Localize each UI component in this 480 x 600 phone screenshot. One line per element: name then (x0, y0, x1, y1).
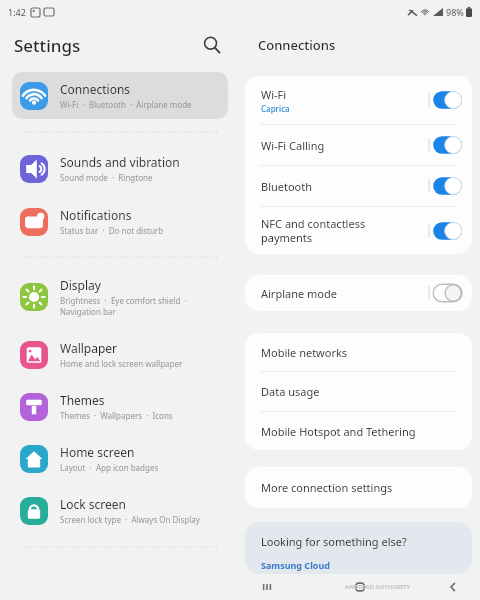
button[interactable]: Samsung Cloud (245, 559, 472, 571)
staticText: Connections (60, 81, 131, 97)
staticText: Brightness · Eye comfort shield · Naviga… (60, 295, 187, 317)
staticText: Sounds and vibration (60, 154, 180, 170)
staticText: 1:42 (8, 6, 26, 18)
button[interactable]: Connections (12, 72, 228, 119)
button[interactable]: Display (12, 268, 228, 326)
button[interactable]: Mobile Hotspot and Tethering (245, 412, 472, 450)
staticText: Display (60, 277, 101, 293)
staticText: Data usage (261, 384, 320, 399)
button[interactable]: Wi-Fi Calling (245, 125, 472, 165)
staticText: Screen lock type · Always On Display (60, 514, 200, 525)
staticText: Layout · App icon badges (60, 462, 159, 473)
staticText: Settings (14, 34, 81, 57)
button[interactable]: NFC and contactless payments (245, 207, 472, 254)
staticText: Mobile Hotspot and Tethering (261, 424, 416, 439)
button[interactable]: Wi-Fi (245, 76, 472, 124)
button[interactable]: Recents (250, 575, 284, 599)
button[interactable]: Looking for something else? (245, 534, 472, 549)
staticText: Themes (60, 392, 105, 408)
staticText: Themes · Wallpapers · Icons (60, 410, 173, 421)
staticText: Lock screen (60, 496, 127, 512)
staticText: Wi-Fi (261, 87, 287, 102)
staticText: ANDROID AUTHORITY (345, 583, 411, 591)
button[interactable]: Lock screen (12, 487, 228, 534)
staticText: Caprica (261, 103, 290, 114)
staticText: Sound mode · Ringtone (60, 172, 153, 183)
staticText: Wi-Fi · Bluetooth · Airplane mode (60, 99, 192, 110)
button[interactable]: Mobile networks (245, 333, 472, 371)
button[interactable]: More connection settings (245, 467, 472, 508)
button[interactable]: Airplane mode (245, 275, 472, 311)
staticText: Home screen (60, 444, 135, 460)
button[interactable]: Data usage (245, 372, 472, 411)
staticText: Samsung Cloud (261, 559, 330, 571)
staticText: Wallpaper (60, 340, 118, 356)
staticText: Connections (258, 36, 336, 54)
staticText: Airplane mode (261, 286, 337, 301)
staticText: Looking for something else? (261, 534, 407, 549)
staticText: NFC and contactless payments (261, 216, 422, 245)
button[interactable]: Notifications (12, 198, 228, 245)
button[interactable]: Wallpaper (12, 331, 228, 378)
staticText: More connection settings (261, 480, 393, 495)
button[interactable]: Search (198, 31, 226, 59)
button[interactable]: Home screen (12, 435, 228, 482)
staticText: Status bar · Do not disturb (60, 225, 164, 236)
staticText: Notifications (60, 207, 132, 223)
button[interactable]: Sounds and vibration (12, 145, 228, 192)
staticText: Wi-Fi Calling (261, 138, 325, 153)
staticText: Home and lock screen wallpaper (60, 358, 183, 369)
button[interactable]: Home (343, 575, 377, 599)
button[interactable]: Bluetooth (245, 166, 472, 206)
button[interactable]: Back (436, 575, 470, 599)
button[interactable]: Themes (12, 383, 228, 430)
staticText: Bluetooth (261, 179, 313, 194)
staticText: 98% (446, 6, 464, 18)
staticText: Mobile networks (261, 345, 348, 360)
